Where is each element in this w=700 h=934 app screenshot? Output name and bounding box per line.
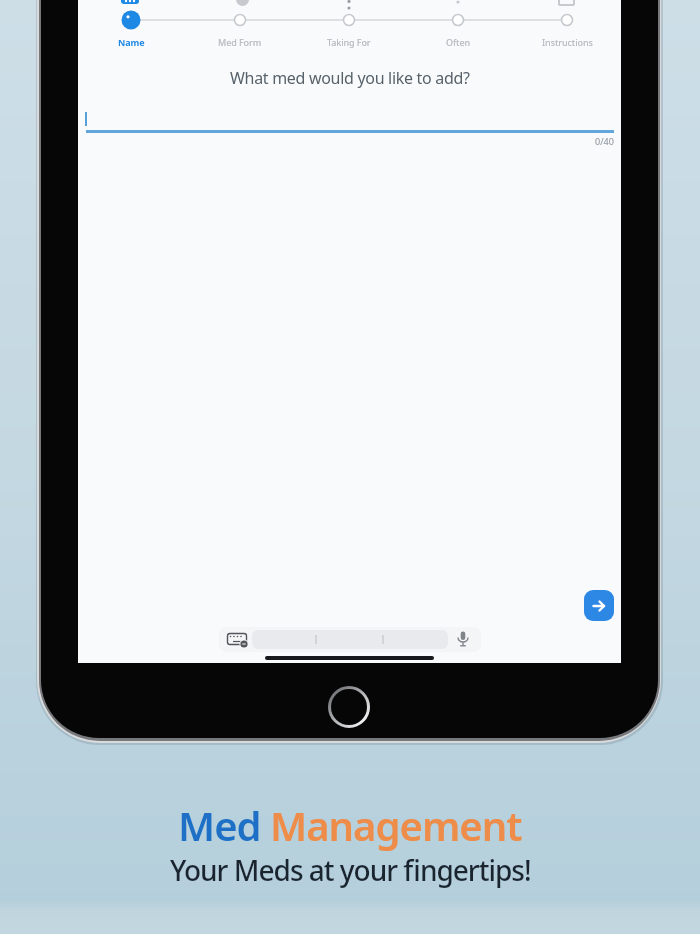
button[interactable]: Name [86,36,176,48]
staticText: Often [446,36,471,48]
staticText: Med Form [218,36,262,48]
staticText: 0/40 [595,135,614,147]
staticText: Instructions [542,36,593,48]
staticText: Name [118,36,145,48]
staticText: Med Management [178,798,522,852]
button[interactable]: Taking For [304,36,394,48]
button[interactable]: Often [413,36,503,48]
staticText: Your Meds at your fingertips! [170,851,531,889]
button[interactable] [227,632,249,648]
staticText: What med would you like to add? [230,67,470,89]
staticText: Taking For [327,36,371,48]
button[interactable]: Med Form [195,36,285,48]
button[interactable]: Instructions [522,36,612,48]
button[interactable] [456,631,470,648]
button[interactable] [584,590,614,621]
